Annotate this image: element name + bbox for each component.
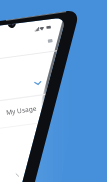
staticText: My Usage (5, 103, 46, 117)
button[interactable]: My Usage (5, 103, 46, 117)
